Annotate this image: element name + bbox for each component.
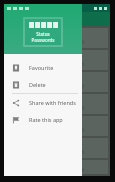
button[interactable]: Delete [4,76,82,93]
staticText: Rate this app [29,116,63,123]
other: Favourite [12,64,20,72]
staticText: Share with friends [29,99,76,106]
other: Rate this app [12,116,20,124]
staticText: Status Passwords [27,31,59,42]
other: Share with friends [12,99,20,107]
button[interactable]: Favourite [4,59,82,76]
staticText: Favourite [29,64,54,71]
button[interactable]: Share with friends [4,94,82,111]
staticText: Delete [29,81,46,88]
button[interactable]: Rate this app [4,111,82,128]
other: Delete [12,81,20,89]
